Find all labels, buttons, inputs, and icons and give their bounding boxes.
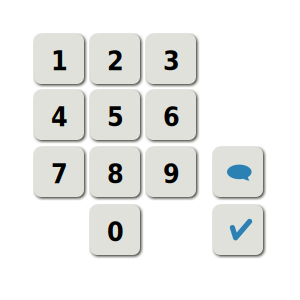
button[interactable]: 1 xyxy=(34,34,84,84)
staticText: 7 xyxy=(51,158,68,189)
button[interactable]: Confirm xyxy=(213,205,263,255)
button[interactable]: 9 xyxy=(146,147,196,197)
staticText: 9 xyxy=(163,158,180,189)
staticText: 5 xyxy=(107,101,124,132)
staticText: 4 xyxy=(51,101,68,132)
button[interactable]: 2 xyxy=(90,34,140,84)
staticText: 0 xyxy=(107,216,124,247)
button[interactable]: 0 xyxy=(90,205,140,255)
staticText: 3 xyxy=(163,45,180,76)
staticText: 2 xyxy=(107,45,124,76)
button[interactable]: 3 xyxy=(146,34,196,84)
button[interactable]: 8 xyxy=(90,147,140,197)
button[interactable]: Message xyxy=(213,147,263,197)
button[interactable]: 7 xyxy=(34,147,84,197)
staticText: 6 xyxy=(163,101,180,132)
button[interactable]: 5 xyxy=(90,90,140,140)
button[interactable]: 6 xyxy=(146,90,196,140)
staticText: 8 xyxy=(107,158,124,189)
staticText: 1 xyxy=(51,45,68,76)
button[interactable]: 4 xyxy=(34,90,84,140)
